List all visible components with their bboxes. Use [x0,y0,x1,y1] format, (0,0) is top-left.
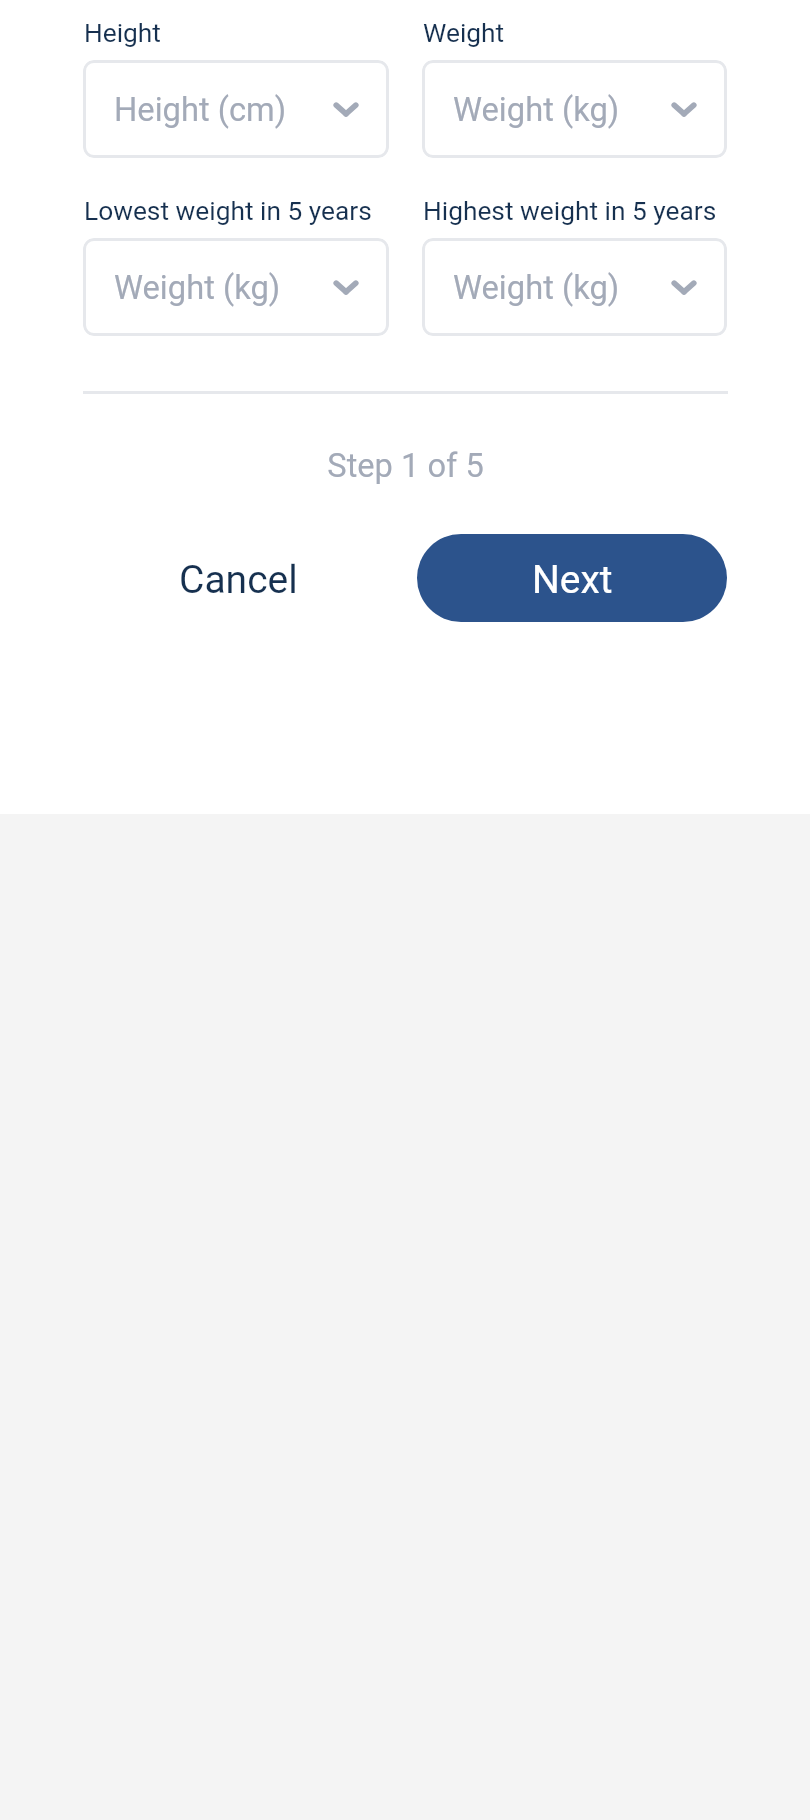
button[interactable]: Weight (kg) [422,60,727,158]
staticText: Weight (kg) [114,269,281,307]
staticText: Weight [423,18,505,49]
staticText: Weight (kg) [453,91,620,129]
staticText: Height [84,18,161,49]
staticText: Cancel [179,557,298,603]
button[interactable]: Weight (kg) [83,238,389,336]
button[interactable]: Cancel [149,536,327,624]
staticText: Next [532,557,613,603]
staticText: Step 1 of 5 [83,447,728,485]
staticText: Height (cm) [114,91,287,129]
button[interactable]: Next [417,534,727,622]
staticText: Weight (kg) [453,269,620,307]
staticText: Highest weight in 5 years [423,196,717,227]
staticText: Lowest weight in 5 years [84,196,372,227]
button[interactable]: Weight (kg) [422,238,727,336]
button[interactable]: Height (cm) [83,60,389,158]
